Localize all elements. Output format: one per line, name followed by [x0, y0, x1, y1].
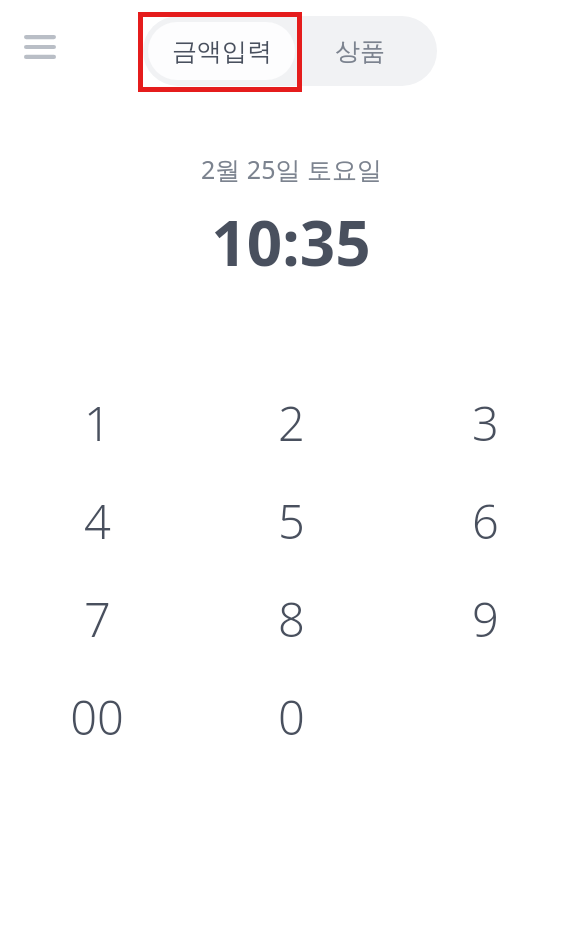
staticText: 상품 [335, 36, 385, 67]
staticText: 3 [472, 391, 499, 455]
button[interactable]: 4 [0, 472, 194, 570]
staticText: 8 [278, 587, 305, 651]
button[interactable]: 00 [0, 668, 194, 766]
button[interactable]: 0 [194, 668, 388, 766]
button[interactable]: 6 [388, 472, 582, 570]
staticText: 0 [278, 685, 305, 749]
staticText: 6 [472, 489, 499, 553]
button[interactable]: 7 [0, 570, 194, 668]
button[interactable]: 3 [388, 374, 582, 472]
staticText: 00 [70, 685, 124, 749]
staticText: 9 [472, 587, 499, 651]
staticText: 5 [278, 489, 305, 553]
button[interactable]: 8 [194, 570, 388, 668]
staticText: 1 [84, 391, 111, 455]
button[interactable]: 5 [194, 472, 388, 570]
button[interactable]: Menu [14, 25, 66, 69]
staticText: 10:35 [211, 200, 371, 284]
staticText: 4 [84, 489, 111, 553]
staticText: 2월 25일 토요일 [201, 152, 382, 186]
button[interactable]: 금액입력 [148, 22, 295, 80]
staticText: 2 [278, 391, 305, 455]
button[interactable]: 상품 [300, 22, 420, 80]
staticText: 7 [84, 587, 111, 651]
button[interactable]: 1 [0, 374, 194, 472]
button[interactable]: 2 [194, 374, 388, 472]
staticText: 금액입력 [172, 36, 272, 67]
button[interactable]: 9 [388, 570, 582, 668]
